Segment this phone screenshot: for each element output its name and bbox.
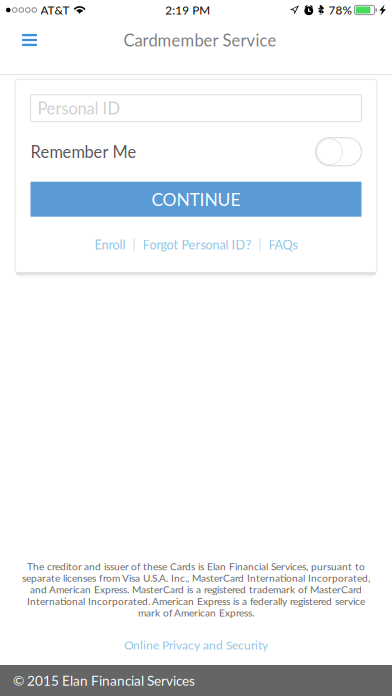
staticText: CONTINUE xyxy=(151,189,240,210)
button[interactable]: FAQs xyxy=(260,230,305,259)
staticText: © 2015 Elan Financial Services xyxy=(13,672,195,689)
button[interactable]: Forgot Personal ID? xyxy=(134,230,259,259)
staticText: 2:19 PM xyxy=(165,3,210,17)
staticText: 78% xyxy=(328,3,351,17)
button[interactable]: Remember Me xyxy=(315,138,361,166)
staticText: The creditor and issuer of these Cards i… xyxy=(27,560,365,572)
staticText: Remember Me xyxy=(30,142,136,162)
staticText: AT&T xyxy=(41,3,70,17)
staticText: FAQs xyxy=(268,237,297,252)
staticText: Personal ID xyxy=(37,98,120,118)
staticText: Forgot Personal ID? xyxy=(142,237,251,252)
button[interactable]: Online Privacy and Security xyxy=(114,619,278,661)
button[interactable]: Menu xyxy=(7,20,51,60)
staticText: mark of American Express. xyxy=(138,606,254,619)
staticText: separate licenses from Visa U.S.A. Inc.,… xyxy=(22,572,370,584)
staticText: Online Privacy and Security xyxy=(124,638,268,652)
staticText: International Incorporated. American Exp… xyxy=(27,595,365,607)
button[interactable]: CONTINUE xyxy=(30,182,361,217)
button[interactable]: Enroll xyxy=(86,230,133,259)
staticText: Enroll xyxy=(94,237,125,252)
staticText: Cardmember Service xyxy=(123,30,276,50)
staticText: and American Express. MasterCard is a re… xyxy=(30,583,362,595)
